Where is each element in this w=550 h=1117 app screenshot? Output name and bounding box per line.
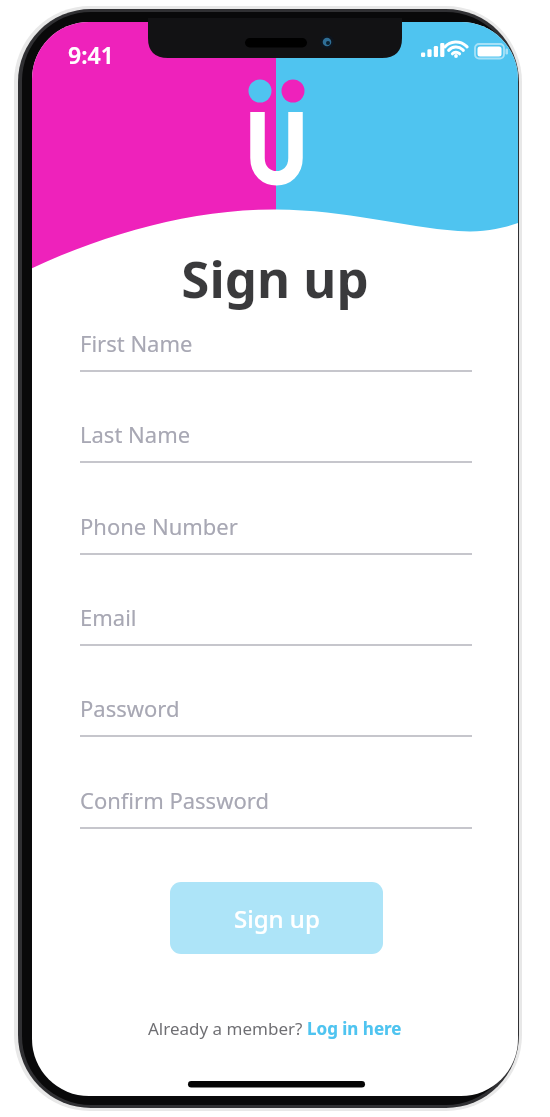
button[interactable]: Log in here xyxy=(307,1017,402,1040)
button[interactable]: Phone Number xyxy=(80,511,472,555)
button[interactable]: Confirm Password xyxy=(80,785,472,829)
staticText: Already a member? xyxy=(148,1017,307,1040)
staticText: Phone Number xyxy=(80,511,238,541)
staticText: First Name xyxy=(80,328,193,358)
button[interactable]: Sign up xyxy=(170,882,383,954)
staticText: Password xyxy=(80,693,180,723)
staticText: Last Name xyxy=(80,419,191,449)
staticText: Email xyxy=(80,602,137,632)
staticText: Confirm Password xyxy=(80,785,269,815)
button[interactable]: Email xyxy=(80,602,472,646)
button[interactable]: First Name xyxy=(80,328,472,372)
staticText: Sign up xyxy=(181,243,369,312)
staticText: 9:41 xyxy=(68,39,114,70)
button[interactable]: Last Name xyxy=(80,419,472,463)
staticText: Log in here xyxy=(307,1017,402,1040)
staticText: Sign up xyxy=(234,902,320,935)
button[interactable]: Password xyxy=(80,693,472,737)
